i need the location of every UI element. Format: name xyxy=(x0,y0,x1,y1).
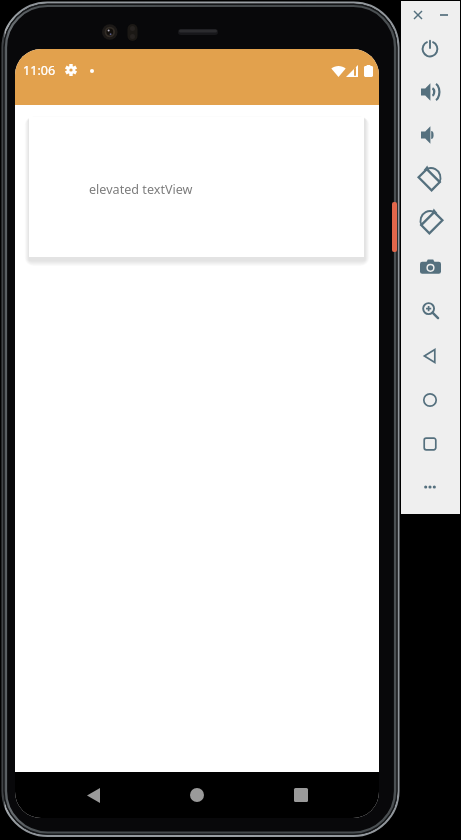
button[interactable]: Home xyxy=(172,772,222,818)
button[interactable]: elevated textView xyxy=(29,117,364,257)
button[interactable]: Power xyxy=(413,31,447,65)
button[interactable]: Screenshot xyxy=(413,250,447,284)
button[interactable]: Zoom xyxy=(413,293,447,327)
button[interactable]: Recents xyxy=(276,772,326,818)
button[interactable]: Volume up xyxy=(413,75,447,109)
button[interactable]: Settings xyxy=(65,64,77,76)
staticText: elevated textView xyxy=(89,181,193,198)
staticText: 11:06 xyxy=(23,62,56,79)
button[interactable]: Back xyxy=(413,339,447,373)
button[interactable]: Close xyxy=(409,6,427,24)
button[interactable]: Home xyxy=(413,383,447,417)
button[interactable]: Back xyxy=(68,772,118,818)
button[interactable]: Rotate left xyxy=(413,160,447,194)
button[interactable]: Rotate right xyxy=(413,203,447,237)
button[interactable]: Overview xyxy=(413,427,447,461)
button[interactable]: Volume down xyxy=(413,118,447,152)
button[interactable]: Minimize xyxy=(435,6,453,24)
button[interactable]: More xyxy=(413,470,447,504)
